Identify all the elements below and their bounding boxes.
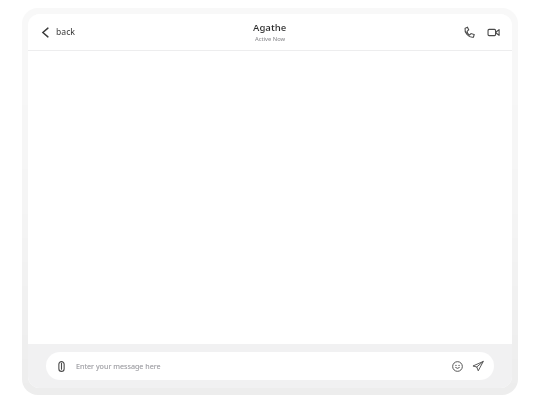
button[interactable]: Video call bbox=[483, 22, 504, 43]
staticText: Active Now bbox=[255, 35, 286, 43]
button[interactable]: Voice call bbox=[459, 22, 480, 43]
button[interactable]: Attach file bbox=[55, 360, 68, 373]
button[interactable]: Attach file bbox=[46, 352, 494, 380]
staticText: Agathe bbox=[253, 21, 287, 34]
staticText: back bbox=[56, 26, 76, 38]
button[interactable]: back bbox=[34, 21, 82, 43]
button[interactable]: Send message bbox=[471, 359, 485, 373]
button[interactable]: Insert emoji bbox=[451, 360, 464, 373]
staticText: Enter your message here bbox=[76, 361, 161, 371]
